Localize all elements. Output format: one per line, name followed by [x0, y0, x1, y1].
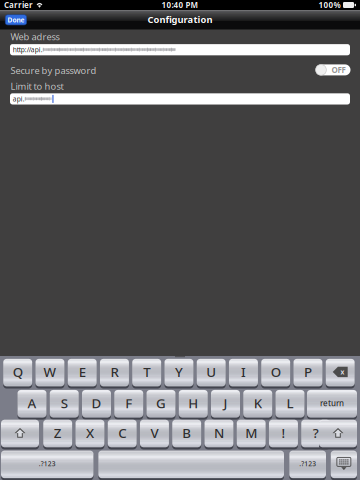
button[interactable]: ?	[301, 419, 330, 449]
button[interactable]: O	[261, 358, 290, 388]
button[interactable]: B	[172, 419, 201, 449]
staticText: Configuration	[147, 13, 212, 26]
button[interactable]: M	[237, 419, 266, 449]
button[interactable]: .?123	[289, 450, 326, 480]
button[interactable]	[319, 419, 357, 449]
staticText: !	[281, 424, 285, 442]
staticText: Done	[7, 15, 24, 24]
button[interactable]: Secure by password, off	[315, 64, 350, 75]
button[interactable]: I	[229, 358, 258, 388]
staticText: W	[43, 363, 56, 381]
staticText: L	[286, 394, 293, 412]
staticText: OFF	[331, 65, 345, 75]
button[interactable]: return	[307, 389, 357, 419]
button[interactable]: R	[100, 358, 129, 388]
staticText: .?123	[299, 459, 316, 468]
button[interactable]: E	[68, 358, 97, 388]
staticText: S	[61, 394, 68, 412]
staticText: D	[91, 394, 101, 412]
button[interactable]: V	[140, 419, 169, 449]
button[interactable]: S	[50, 389, 79, 419]
button[interactable]: H	[179, 389, 208, 419]
button[interactable]: Q	[3, 358, 32, 388]
button[interactable]: Done	[5, 15, 27, 25]
staticText: .?123	[39, 459, 56, 468]
staticText: G	[156, 394, 166, 412]
staticText: 10:40 PM	[161, 0, 198, 10]
button[interactable]: Z	[43, 419, 72, 449]
button[interactable]: W	[35, 358, 64, 388]
staticText: I	[241, 363, 246, 381]
button[interactable]: X	[75, 419, 104, 449]
button[interactable]: K	[243, 389, 272, 419]
staticText: U	[206, 363, 216, 381]
button[interactable]: C	[108, 419, 137, 449]
staticText: Z	[54, 424, 62, 442]
staticText: Limit to host	[10, 80, 63, 92]
button[interactable]	[331, 450, 357, 480]
button[interactable]: !	[269, 419, 298, 449]
button[interactable]: N	[204, 419, 233, 449]
staticText: C	[118, 424, 126, 442]
staticText: ?	[313, 424, 319, 442]
staticText: Y	[175, 363, 183, 381]
button[interactable]: D	[82, 389, 111, 419]
button[interactable]: api.	[10, 93, 350, 104]
button[interactable]: P	[293, 358, 322, 388]
staticText: X	[86, 424, 94, 442]
button[interactable]: x	[326, 358, 355, 388]
staticText: api.	[13, 94, 25, 103]
staticText: J	[223, 394, 227, 412]
staticText: Secure by password	[10, 64, 96, 76]
staticText: Q	[13, 363, 23, 381]
button[interactable]: A	[17, 389, 46, 419]
staticText: E	[79, 363, 86, 381]
button[interactable]: Y	[164, 358, 193, 388]
staticText: http://api.	[13, 45, 43, 54]
button[interactable]	[98, 450, 284, 480]
button[interactable]: F	[114, 389, 143, 419]
staticText: x	[340, 367, 344, 376]
button[interactable]: L	[275, 389, 304, 419]
staticText: Web adress	[10, 30, 59, 43]
staticText: return	[320, 398, 344, 408]
staticText: K	[254, 394, 262, 412]
staticText: O	[271, 363, 281, 381]
staticText: P	[304, 363, 312, 381]
button[interactable]: http://api.	[10, 44, 350, 55]
staticText: Carrier	[4, 0, 33, 10]
staticText: T	[143, 363, 150, 381]
staticText: M	[245, 424, 257, 442]
staticText: H	[188, 394, 198, 412]
staticText: 100%	[318, 0, 340, 10]
staticText: F	[125, 394, 132, 412]
staticText: N	[214, 424, 224, 442]
button[interactable]: G	[146, 389, 175, 419]
button[interactable]	[1, 419, 39, 449]
button[interactable]: J	[211, 389, 240, 419]
staticText: V	[150, 424, 158, 442]
button[interactable]: .?123	[1, 450, 93, 480]
staticText: B	[182, 424, 191, 442]
staticText: A	[27, 394, 36, 412]
button[interactable]: U	[197, 358, 226, 388]
staticText: R	[110, 363, 118, 381]
button[interactable]: T	[132, 358, 161, 388]
